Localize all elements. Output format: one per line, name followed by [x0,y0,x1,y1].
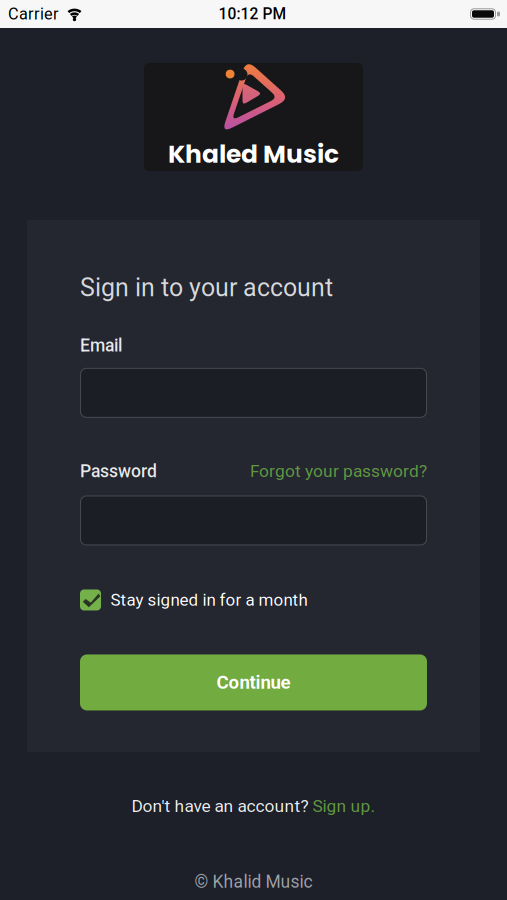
staticText: Password [80,461,157,481]
staticText: © Khalid Music [194,871,312,892]
staticText: Khaled Music [168,136,339,171]
staticText: Don't have an account? [131,796,308,816]
staticText: Carrier [8,4,59,24]
button[interactable]: Email [80,368,427,418]
staticText: Continue [216,671,290,693]
button[interactable]: Forgot your password? [250,461,427,481]
button[interactable]: Password [80,495,427,545]
button[interactable]: Sign up. [312,796,375,816]
staticText: 10:12 PM [218,5,286,23]
staticText: Sign in to your account [80,273,333,302]
staticText: Stay signed in for a month [110,590,307,610]
staticText: Sign up. [312,796,375,816]
button[interactable]: Continue [80,654,427,710]
staticText: Email [80,335,122,356]
button[interactable]: Stay signed in for a month [80,589,307,610]
staticText: Forgot your password? [250,461,427,481]
